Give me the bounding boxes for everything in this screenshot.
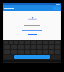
button[interactable]: Space [14, 55, 50, 59]
